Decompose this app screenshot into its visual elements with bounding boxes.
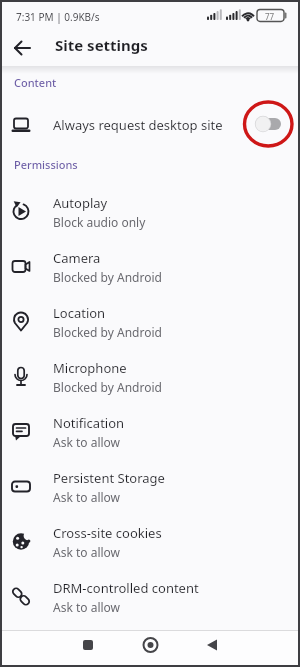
button[interactable]: [8, 36, 38, 60]
button[interactable]: Notification: [0, 404, 300, 459]
staticText: 7:31 PM | 0.9KB/s: [16, 10, 100, 24]
staticText: Camera: [53, 249, 101, 267]
staticText: Notification: [53, 414, 125, 432]
button[interactable]: Always request desktop site: [0, 102, 300, 148]
staticText: Blocked by Android: [53, 379, 162, 395]
staticText: Ask to allow: [53, 489, 121, 505]
staticText: Cross-site cookies: [53, 524, 162, 542]
staticText: Ask to allow: [53, 544, 121, 560]
staticText: Blocked by Android: [53, 269, 162, 285]
staticText: Ask to allow: [53, 434, 121, 450]
staticText: Content: [14, 75, 57, 90]
button[interactable]: [200, 630, 300, 667]
staticText: Autoplay: [53, 194, 108, 212]
button[interactable]: Autoplay: [0, 184, 300, 239]
button[interactable]: [254, 102, 300, 148]
staticText: Microphone: [53, 359, 127, 377]
button[interactable]: [0, 630, 100, 667]
staticText: DRM-controlled content: [53, 579, 199, 597]
button[interactable]: Microphone: [0, 349, 300, 404]
button[interactable]: Persistent Storage: [0, 459, 300, 514]
staticText: Always request desktop site: [53, 116, 223, 134]
staticText: Location: [53, 304, 106, 322]
staticText: Site settings: [55, 35, 148, 55]
button[interactable]: Location: [0, 294, 300, 349]
staticText: Permissions: [14, 157, 78, 172]
staticText: Persistent Storage: [53, 469, 165, 487]
button[interactable]: Cross-site cookies: [0, 514, 300, 569]
staticText: 77: [265, 11, 275, 22]
button[interactable]: [100, 630, 200, 667]
button[interactable]: DRM-controlled content: [0, 569, 300, 624]
button[interactable]: Camera: [0, 239, 300, 294]
staticText: Blocked by Android: [53, 324, 162, 340]
staticText: Ask to allow: [53, 599, 121, 615]
staticText: Block audio only: [53, 214, 146, 230]
